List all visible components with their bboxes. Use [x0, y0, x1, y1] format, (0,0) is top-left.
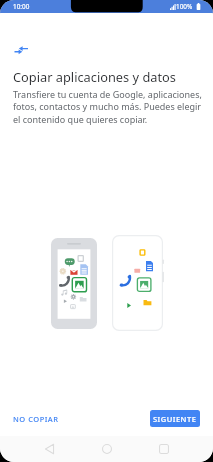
button[interactable]: Back — [36, 436, 62, 462]
button[interactable]: SIGUIENTE — [150, 410, 200, 427]
staticText: 100% — [176, 2, 193, 11]
staticText: Transfiere tu cuenta de Google, aplicaci… — [13, 88, 205, 126]
button[interactable]: Home — [94, 436, 120, 462]
button[interactable]: Recents — [151, 436, 177, 462]
staticText: NO COPIAR — [13, 414, 59, 424]
staticText: SIGUIENTE — [153, 414, 197, 424]
other: Copiar aplicaciones y datos — [13, 44, 29, 56]
staticText: Copiar aplicaciones y datos — [13, 68, 176, 85]
staticText: 10:00 — [13, 2, 30, 11]
button[interactable]: NO COPIAR — [8, 410, 64, 428]
